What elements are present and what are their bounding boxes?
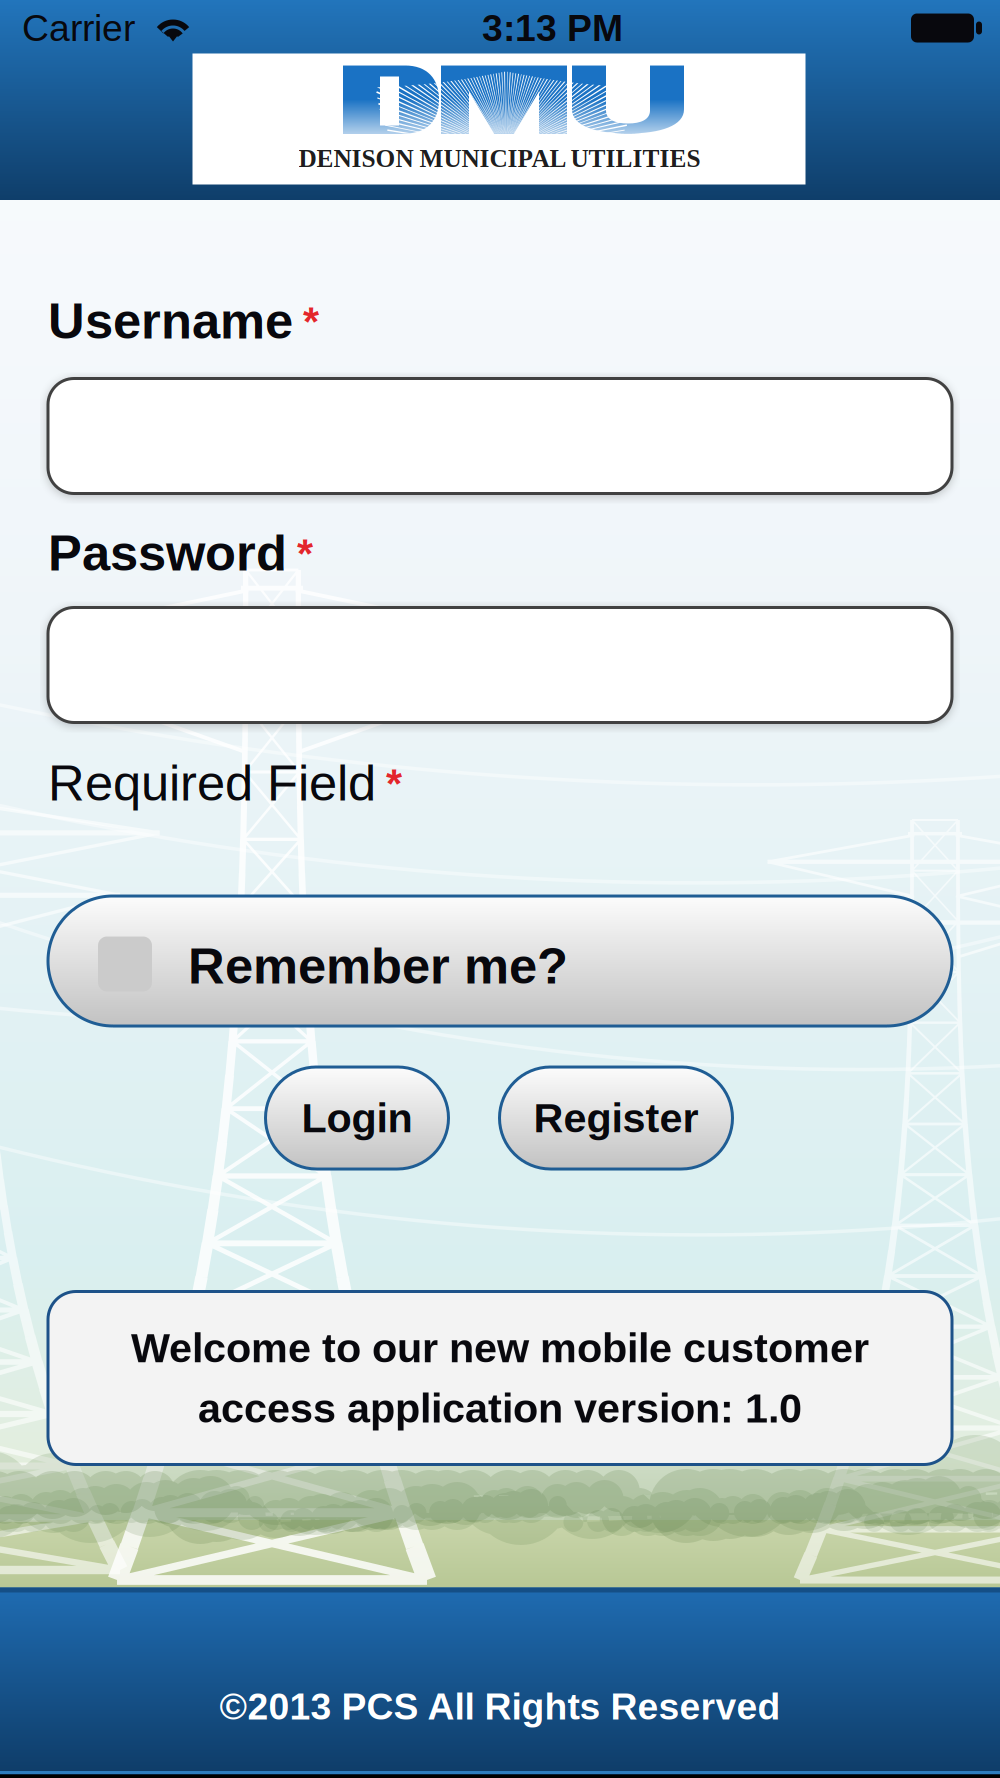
staticText: Remember me? — [188, 938, 568, 994]
button[interactable]: Login — [265, 1067, 448, 1169]
staticText: Required Field — [48, 755, 376, 811]
button[interactable]: Text field — [48, 378, 952, 493]
button[interactable]: Remember me? — [48, 896, 952, 1026]
staticText: * — [386, 760, 402, 806]
staticText: Login — [301, 1095, 412, 1141]
staticText: * — [297, 530, 313, 576]
staticText: * — [303, 298, 319, 344]
staticText: access application version: 1.0 — [198, 1385, 802, 1431]
staticText: Password — [48, 525, 287, 581]
staticText: ©2013 PCS All Rights Reserved — [219, 1686, 780, 1727]
button[interactable]: Text field — [48, 607, 952, 722]
staticText: Carrier — [22, 7, 135, 49]
button[interactable]: Register — [499, 1067, 732, 1169]
staticText: 3:13 PM — [482, 7, 623, 49]
staticText: DENISON MUNICIPAL UTILITIES — [298, 144, 700, 173]
staticText: Username — [48, 293, 293, 349]
staticText: Welcome to our new mobile customer — [131, 1325, 869, 1371]
staticText: Register — [533, 1095, 698, 1141]
